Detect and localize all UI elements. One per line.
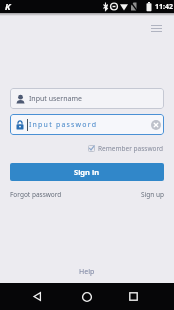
button[interactable] [124,287,143,306]
staticText: 11:42 [155,2,173,12]
button[interactable]: Forgot password [10,190,62,199]
button[interactable]: Sign up [141,190,164,199]
staticText: Input password [29,120,98,130]
button[interactable] [77,287,96,306]
button[interactable] [151,120,161,130]
staticText: Remember password [98,144,164,153]
staticText: Forgot password [10,190,62,199]
staticText: Sign up [141,190,164,199]
staticText: Sign in [74,167,100,177]
button[interactable] [28,287,47,306]
staticText: Input username [29,94,82,104]
button[interactable]: Input username [10,88,164,109]
button[interactable] [149,23,164,34]
staticText: K [5,0,11,12]
button[interactable]: Sign in [10,163,164,181]
button[interactable]: Input password [10,114,164,135]
staticText: Help [79,267,95,277]
button[interactable]: Help [79,267,95,277]
button[interactable]: Remember password [88,144,164,153]
